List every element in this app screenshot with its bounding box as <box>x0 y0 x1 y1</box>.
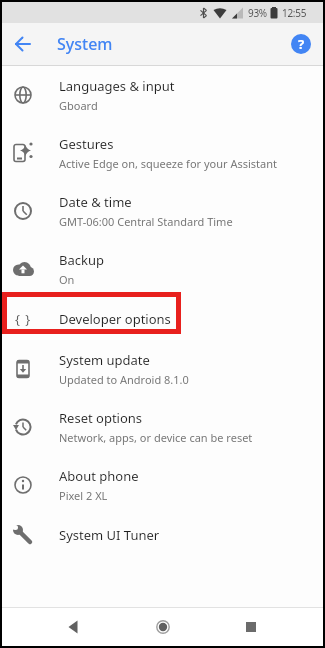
staticText: { } <box>15 310 32 328</box>
button[interactable]: About phone <box>2 456 323 514</box>
staticText: Pixel 2 XL <box>59 488 108 503</box>
button[interactable]: Gestures <box>2 124 323 182</box>
staticText: Developer options <box>59 310 171 328</box>
staticText: Updated to Android 8.1.0 <box>59 372 189 387</box>
button[interactable] <box>55 608 93 646</box>
staticText: Date & time <box>59 193 132 211</box>
button[interactable] <box>144 608 182 646</box>
button[interactable]: Reset options <box>2 398 323 456</box>
staticText: System UI Tuner <box>59 526 160 544</box>
staticText: Gestures <box>59 135 114 153</box>
button[interactable]: { } <box>2 298 323 340</box>
staticText: About phone <box>59 467 139 485</box>
staticText: On <box>59 272 75 287</box>
button[interactable]: Backup <box>2 240 323 298</box>
staticText: System <box>57 33 113 55</box>
button[interactable]: System UI Tuner <box>2 514 323 556</box>
staticText: ? <box>298 35 305 53</box>
button[interactable]: ? <box>291 34 311 54</box>
staticText: Gboard <box>59 98 98 113</box>
button[interactable]: Languages & input <box>2 66 323 124</box>
button[interactable] <box>2 23 44 65</box>
button[interactable]: Date & time <box>2 182 323 240</box>
staticText: 93% <box>248 6 267 20</box>
staticText: System update <box>59 351 150 369</box>
button[interactable]: System update <box>2 340 323 398</box>
staticText: Active Edge on, squeeze for your Assista… <box>59 156 277 171</box>
staticText: Languages & input <box>59 77 175 95</box>
staticText: Network, apps, or device can be reset <box>59 430 253 445</box>
staticText: Backup <box>59 251 104 269</box>
staticText: GMT-06:00 Central Standard Time <box>59 214 233 229</box>
staticText: 12:55 <box>282 6 307 20</box>
button[interactable] <box>232 608 270 646</box>
staticText: Reset options <box>59 409 143 427</box>
